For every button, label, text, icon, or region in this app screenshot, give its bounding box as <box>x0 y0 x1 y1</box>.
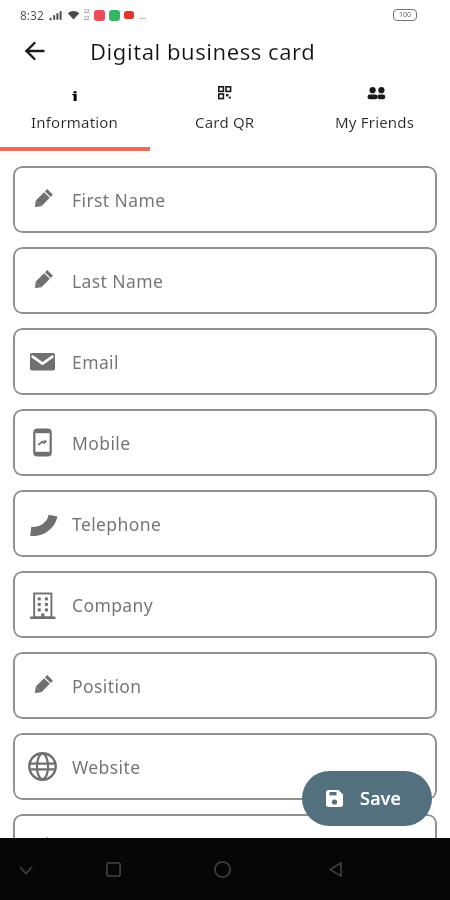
staticText: Company <box>72 593 154 617</box>
button[interactable]: Save <box>302 771 432 826</box>
button[interactable] <box>210 857 234 881</box>
staticText: 100 <box>399 10 412 20</box>
staticText: Telephone <box>72 512 162 536</box>
button[interactable]: i <box>0 78 150 147</box>
staticText: Last Name <box>72 269 164 293</box>
button[interactable]: Last Name <box>13 247 437 314</box>
staticText: Digital business card <box>90 36 316 66</box>
button[interactable]: Card QR <box>150 78 300 147</box>
staticText: Card QR <box>195 112 255 132</box>
button[interactable]: My Friends <box>300 78 450 147</box>
staticText: i <box>72 85 79 101</box>
button[interactable] <box>323 857 347 881</box>
staticText: Information <box>31 112 119 132</box>
button[interactable]: Position <box>13 652 437 719</box>
staticText: … <box>139 9 147 21</box>
staticText: Email <box>72 350 119 374</box>
staticText: 8:32 <box>20 7 44 23</box>
staticText: Position <box>72 674 142 698</box>
button[interactable] <box>14 30 56 72</box>
staticText: My Friends <box>335 112 415 132</box>
button[interactable]: Fax <box>13 814 437 838</box>
button[interactable]: Company <box>13 571 437 638</box>
button[interactable]: Website <box>13 733 437 800</box>
staticText: Mobile <box>72 431 131 455</box>
button[interactable]: First Name <box>13 166 437 233</box>
button[interactable]: Mobile <box>13 409 437 476</box>
button[interactable] <box>14 858 38 882</box>
staticText: First Name <box>72 188 166 212</box>
staticText: 22 22 <box>84 8 90 22</box>
button[interactable]: Email <box>13 328 437 395</box>
staticText: Website <box>72 755 141 779</box>
button[interactable]: Telephone <box>13 490 437 557</box>
button[interactable] <box>101 857 125 881</box>
staticText: Save <box>360 786 402 811</box>
